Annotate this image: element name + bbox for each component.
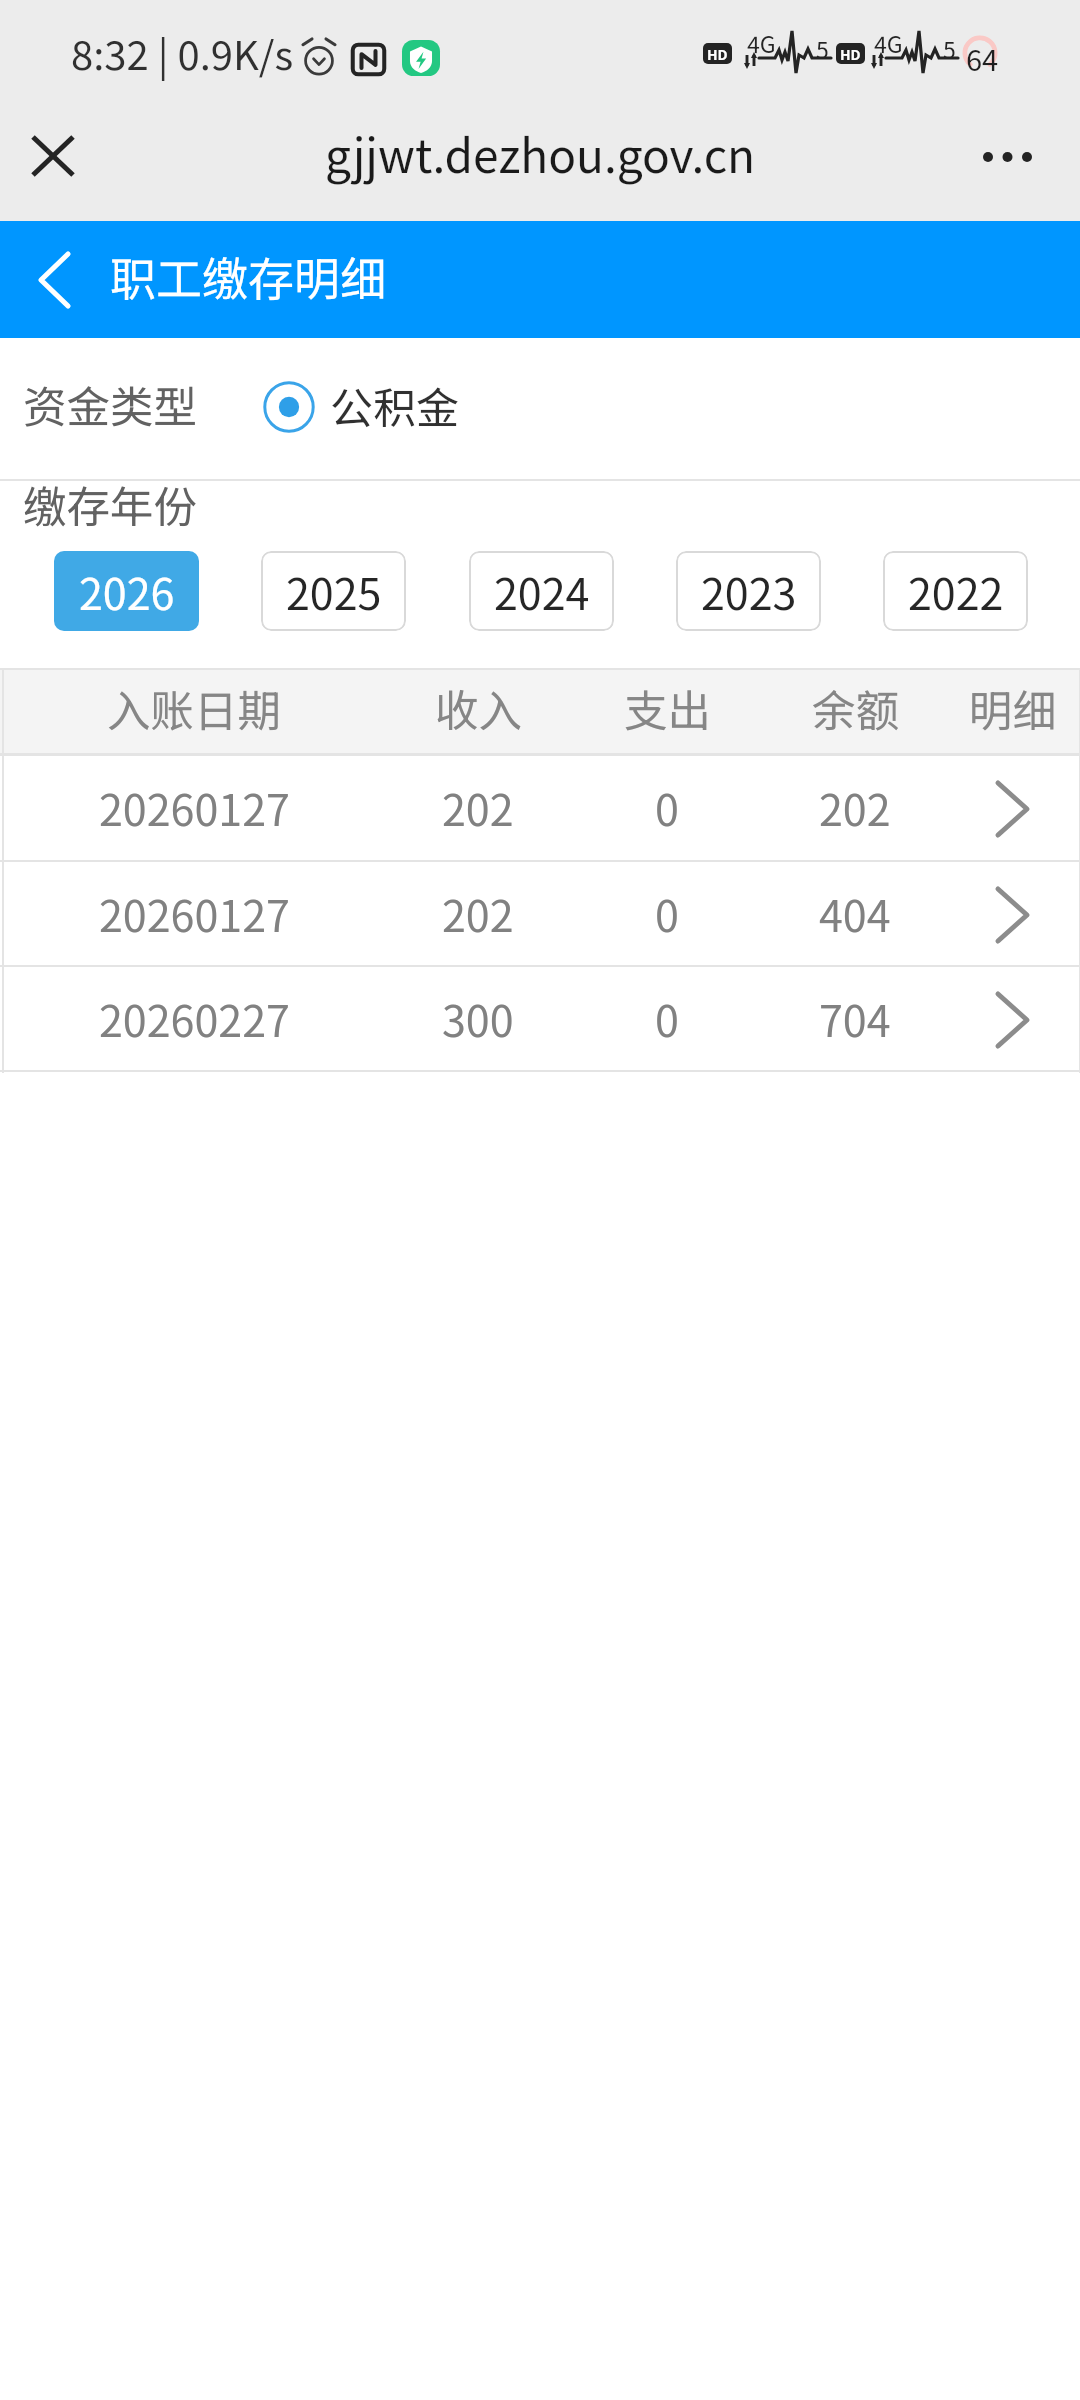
staticText: 0 (655, 987, 679, 1049)
staticText: 5 (816, 32, 829, 65)
staticText: HD (707, 44, 728, 64)
staticText: 余额 (812, 677, 899, 740)
button[interactable]: View details (932, 967, 1080, 1072)
staticText: 明细 (969, 677, 1056, 740)
staticText: 300 (442, 987, 514, 1049)
button[interactable]: Back (0, 221, 108, 338)
staticText: 404 (819, 882, 891, 944)
staticText: HD (840, 44, 861, 64)
staticText: 收入 (435, 677, 522, 740)
staticText: 缴存年份 (23, 473, 197, 536)
staticText: 2025 (286, 560, 382, 622)
button[interactable]: View details (932, 862, 1080, 967)
staticText: 0 (655, 882, 679, 944)
button[interactable]: 20260127 (0, 862, 1080, 967)
staticText: 公积金 (330, 374, 459, 436)
staticText: 704 (819, 987, 891, 1049)
staticText: 2022 (908, 560, 1004, 622)
button[interactable]: 20260127 (0, 755, 1080, 862)
staticText: 资金类型 (23, 373, 197, 436)
staticText: 入账日期 (107, 677, 281, 740)
staticText: 5 (943, 32, 956, 65)
staticText: 64 (966, 37, 999, 75)
staticText: 2026 (79, 560, 175, 622)
staticText: 202 (442, 882, 514, 944)
staticText: 20260127 (99, 882, 290, 944)
staticText: 2024 (494, 560, 590, 622)
staticText: 202 (442, 776, 514, 838)
button[interactable]: 20260227 (0, 967, 1080, 1072)
staticText: 支出 (624, 677, 711, 740)
button[interactable]: More options (965, 115, 1049, 199)
button[interactable]: 2026 (54, 551, 199, 631)
button[interactable]: 2023 (676, 551, 821, 631)
staticText: 2023 (701, 560, 797, 622)
staticText: 4G (874, 26, 903, 59)
button[interactable]: 2024 (469, 551, 614, 631)
button[interactable]: Close (11, 114, 95, 198)
staticText: 0 (655, 776, 679, 838)
staticText: 20260227 (99, 987, 290, 1049)
staticText: 4G (747, 26, 776, 59)
staticText: 8:32 | 0.9K/s (71, 24, 294, 82)
button[interactable]: 2022 (883, 551, 1028, 631)
button[interactable]: View details (932, 755, 1080, 862)
button[interactable]: 2025 (261, 551, 406, 631)
staticText: gjjwt.dezhou.gov.cn (325, 120, 756, 187)
staticText: 20260127 (99, 776, 290, 838)
button[interactable]: 公积金 (263, 376, 459, 438)
staticText: 202 (819, 776, 891, 838)
staticText: 职工缴存明细 (110, 243, 386, 310)
